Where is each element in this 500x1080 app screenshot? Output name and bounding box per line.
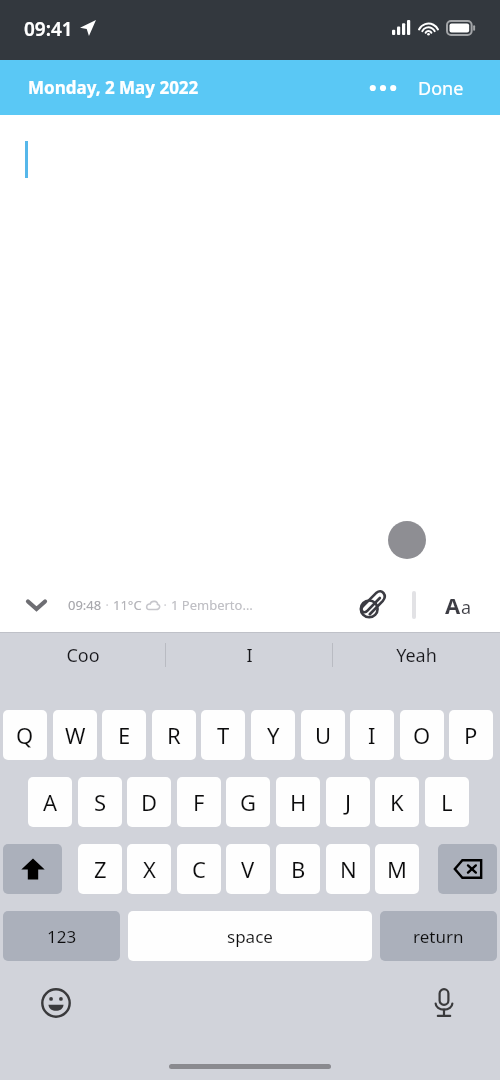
- button[interactable]: Z: [78, 844, 122, 894]
- staticText: 1 Pemberto…: [171, 596, 253, 614]
- staticText: K: [390, 787, 404, 817]
- button[interactable]: I: [166, 632, 333, 678]
- staticText: L: [441, 787, 453, 817]
- staticText: C: [192, 854, 206, 884]
- button[interactable]: D: [127, 777, 171, 827]
- button[interactable]: Yeah: [333, 632, 500, 678]
- button[interactable]: return: [380, 911, 497, 961]
- button[interactable]: Collapse: [16, 578, 56, 632]
- staticText: F: [193, 787, 205, 817]
- button[interactable]: [3, 844, 62, 894]
- button[interactable]: M: [375, 844, 419, 894]
- staticText: 09:48: [68, 596, 102, 614]
- staticText: A: [43, 787, 58, 817]
- button[interactable]: 123: [3, 911, 120, 961]
- staticText: H: [290, 787, 307, 817]
- button[interactable]: C: [177, 844, 221, 894]
- button[interactable]: X: [127, 844, 171, 894]
- staticText: B: [291, 854, 306, 884]
- staticText: ·: [102, 596, 113, 614]
- staticText: Q: [16, 720, 34, 750]
- button[interactable]: P: [449, 710, 493, 760]
- button[interactable]: O: [400, 710, 444, 760]
- staticText: Z: [94, 854, 107, 884]
- button[interactable]: H: [276, 777, 320, 827]
- staticText: Done: [418, 76, 464, 101]
- button[interactable]: U: [301, 710, 345, 760]
- staticText: M: [387, 854, 407, 884]
- button[interactable]: Done: [412, 66, 470, 110]
- button[interactable]: Attach: [348, 578, 396, 632]
- staticText: N: [340, 854, 357, 884]
- button[interactable]: L: [425, 777, 469, 827]
- staticText: V: [241, 854, 255, 884]
- button[interactable]: N: [326, 844, 370, 894]
- staticText: W: [65, 720, 86, 750]
- staticText: Coo: [66, 643, 100, 668]
- staticText: a: [461, 595, 472, 620]
- button[interactable]: Q: [3, 710, 47, 760]
- staticText: I: [246, 643, 253, 668]
- staticText: Yeah: [396, 643, 437, 668]
- button[interactable]: G: [226, 777, 270, 827]
- button[interactable]: V: [226, 844, 270, 894]
- button[interactable]: T: [201, 710, 245, 760]
- staticText: U: [315, 720, 332, 750]
- staticText: 123: [47, 925, 77, 948]
- staticText: G: [240, 787, 257, 817]
- button[interactable]: S: [78, 777, 122, 827]
- staticText: Monday, 2 May 2022: [28, 76, 199, 99]
- staticText: 11°C: [113, 596, 142, 614]
- button[interactable]: A: [430, 578, 486, 632]
- button[interactable]: Coo: [0, 632, 166, 678]
- button[interactable]: Backspace: [438, 844, 497, 894]
- staticText: 09:41: [24, 16, 73, 42]
- staticText: P: [464, 720, 478, 750]
- staticText: space: [227, 925, 273, 948]
- button[interactable]: E: [102, 710, 146, 760]
- button[interactable]: Dictation: [418, 977, 470, 1029]
- staticText: O: [413, 720, 431, 750]
- button[interactable]: B: [276, 844, 320, 894]
- staticText: J: [345, 787, 352, 817]
- staticText: T: [217, 720, 230, 750]
- button[interactable]: I: [350, 710, 394, 760]
- staticText: D: [141, 787, 158, 817]
- button[interactable]: Emoji: [30, 977, 82, 1029]
- staticText: ·: [160, 596, 171, 614]
- staticText: A: [445, 590, 461, 620]
- button[interactable]: F: [177, 777, 221, 827]
- staticText: S: [94, 787, 107, 817]
- staticText: E: [118, 720, 131, 750]
- button[interactable]: A: [28, 777, 72, 827]
- button[interactable]: J: [326, 777, 370, 827]
- button[interactable]: space: [128, 911, 372, 961]
- button[interactable]: More options: [360, 66, 406, 110]
- button[interactable]: W: [53, 710, 97, 760]
- button[interactable]: Y: [251, 710, 295, 760]
- button[interactable]: R: [152, 710, 196, 760]
- staticText: Y: [267, 720, 280, 750]
- staticText: R: [167, 720, 181, 750]
- staticText: return: [413, 925, 464, 948]
- button[interactable]: K: [375, 777, 419, 827]
- staticText: X: [143, 854, 156, 884]
- staticText: I: [368, 720, 376, 750]
